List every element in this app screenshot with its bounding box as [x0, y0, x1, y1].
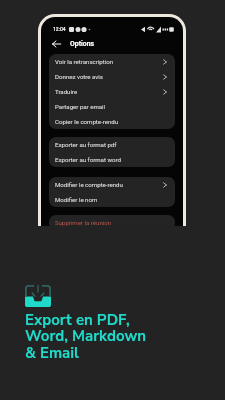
other: Export — [25, 285, 51, 307]
staticText: Copier le compte-rendu — [55, 118, 119, 125]
button[interactable]: Traduire — [49, 84, 175, 99]
button[interactable]: Modifier le nom — [49, 192, 175, 207]
staticText: Supprimer la réunion — [55, 219, 112, 226]
button[interactable]: Partager par email — [49, 99, 175, 114]
staticText: Modifier le nom — [55, 196, 98, 203]
staticText: Export en PDF, Word, Markdown & Email — [25, 310, 146, 364]
button[interactable]: Voir la retranscription — [49, 54, 175, 69]
staticText: Exporter au format pdf — [55, 141, 117, 148]
staticText: Options — [70, 40, 95, 48]
staticText: Partager par email — [55, 103, 106, 110]
button[interactable]: Copier le compte-rendu — [49, 114, 175, 129]
button[interactable]: Donnez votre avis — [49, 69, 175, 84]
button[interactable]: Exporter au format pdf — [49, 137, 175, 152]
staticText: Modifier le compte-rendu — [55, 181, 123, 188]
button[interactable]: Exporter au format word — [49, 152, 175, 167]
button[interactable]: Back — [49, 38, 63, 49]
staticText: Donnez votre avis — [55, 73, 103, 80]
staticText: Voir la retranscription — [55, 58, 114, 65]
staticText: Traduire — [55, 88, 78, 95]
staticText: Exporter au format word — [55, 156, 121, 163]
staticText: 12:04 — [53, 26, 66, 32]
button[interactable]: Modifier le compte-rendu — [49, 177, 175, 192]
button[interactable]: Supprimer la réunion — [49, 215, 175, 226]
